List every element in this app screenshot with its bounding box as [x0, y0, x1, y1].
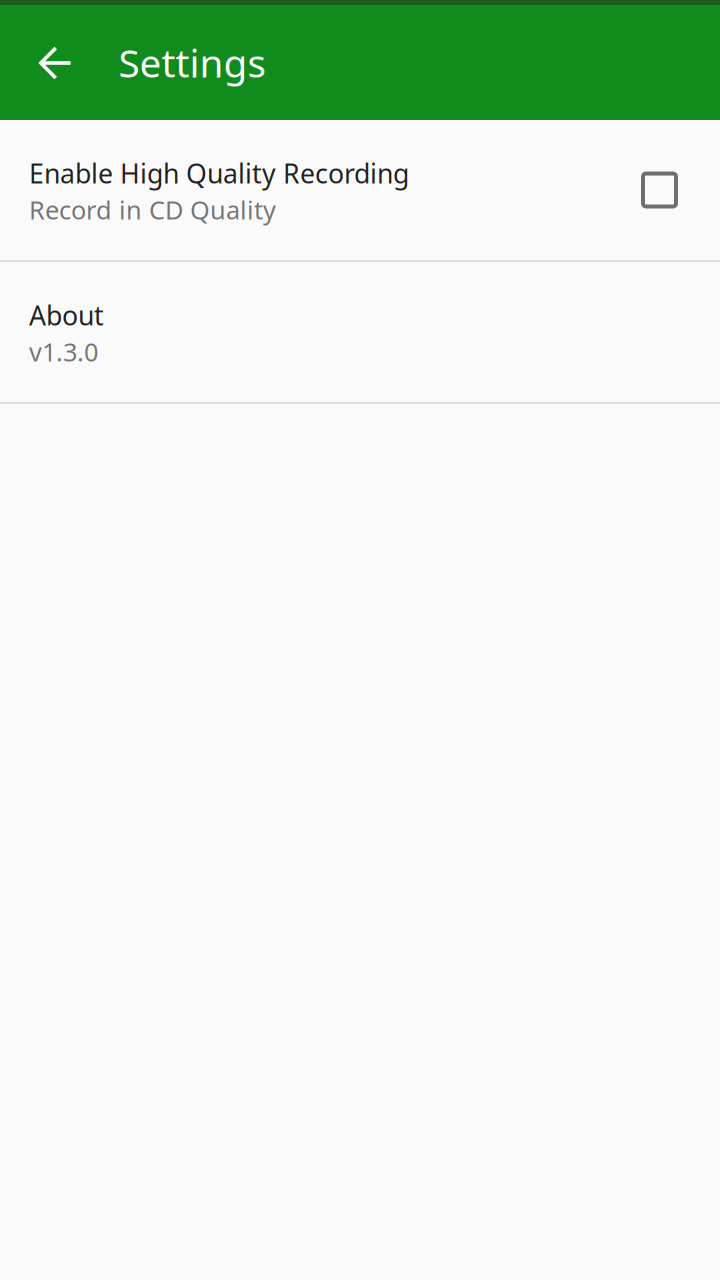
- staticText: Record in CD Quality: [29, 193, 276, 226]
- button[interactable]: Back: [23, 30, 87, 94]
- staticText: Enable High Quality Recording: [29, 155, 409, 191]
- staticText: About: [29, 297, 104, 333]
- staticText: Settings: [118, 37, 266, 88]
- staticText: v1.3.0: [29, 335, 98, 368]
- button[interactable]: Enable High Quality Recording: [0, 120, 720, 260]
- button[interactable]: About: [0, 262, 720, 402]
